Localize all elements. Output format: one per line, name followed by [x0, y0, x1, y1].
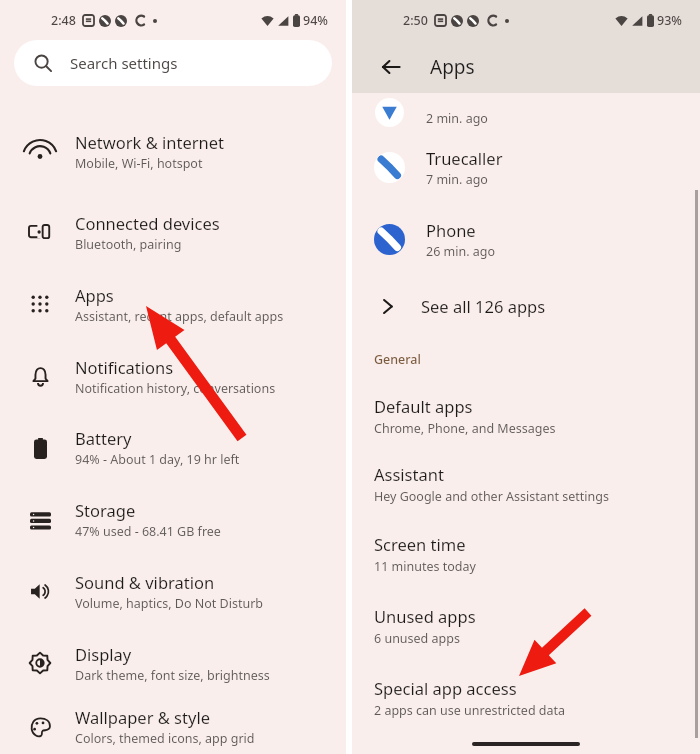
staticText: 26 min. ago: [426, 243, 496, 260]
staticText: Assistant: [374, 463, 444, 485]
staticText: Screen time: [374, 533, 466, 555]
button[interactable]: Special app access: [352, 662, 700, 734]
staticText: Storage: [75, 499, 136, 521]
staticText: Dark theme, font size, brightness: [75, 667, 270, 684]
button[interactable]: Storage: [0, 483, 346, 555]
staticText: 47% used - 68.41 GB free: [75, 523, 221, 540]
button[interactable]: Display: [0, 627, 346, 699]
staticText: 7 min. ago: [426, 171, 488, 188]
button[interactable]: Search settings: [14, 40, 332, 86]
staticText: Sound & vibration: [75, 571, 215, 593]
staticText: See all 126 apps: [421, 295, 546, 317]
button[interactable]: Back: [374, 50, 408, 84]
button[interactable]: Notifications: [0, 340, 346, 412]
staticText: Notifications: [75, 356, 174, 378]
staticText: 94% - About 1 day, 19 hr left: [75, 451, 240, 468]
staticText: 93%: [657, 12, 682, 29]
staticText: 6 unused apps: [374, 630, 460, 647]
button[interactable]: See all 126 apps: [352, 283, 700, 329]
staticText: Volume, haptics, Do Not Disturb: [75, 595, 264, 612]
staticText: Default apps: [374, 395, 473, 417]
staticText: Wallpaper & style: [75, 706, 210, 728]
button[interactable]: Phone: [352, 203, 700, 275]
staticText: Colors, themed icons, app grid: [75, 730, 255, 747]
button[interactable]: Screen time: [352, 518, 700, 590]
staticText: Notification history, conversations: [75, 380, 276, 397]
staticText: Bluetooth, pairing: [75, 236, 182, 253]
staticText: Display: [75, 643, 132, 665]
staticText: Truecaller: [426, 147, 503, 169]
button[interactable]: Sound & vibration: [0, 555, 346, 627]
staticText: Chrome, Phone, and Messages: [374, 420, 556, 437]
staticText: 11 minutes today: [374, 558, 476, 575]
staticText: Network & internet: [75, 131, 225, 153]
staticText: General: [374, 351, 421, 368]
staticText: Unused apps: [374, 605, 476, 627]
button[interactable]: Network & internet: [0, 106, 346, 196]
staticText: Phone: [426, 219, 476, 241]
button[interactable]: Default apps: [352, 382, 700, 450]
button[interactable]: Truecaller: [352, 131, 700, 203]
button[interactable]: Unused apps: [352, 590, 700, 662]
staticText: 2:48: [51, 12, 76, 29]
staticText: Apps: [430, 54, 475, 80]
staticText: 2:50: [403, 12, 428, 29]
staticText: Connected devices: [75, 212, 220, 234]
staticText: Assistant, recent apps, default apps: [75, 308, 284, 325]
button[interactable]: Assistant: [352, 450, 700, 518]
button[interactable]: 2 min. ago: [352, 93, 700, 131]
button[interactable]: Wallpaper & style: [0, 699, 346, 754]
staticText: Special app access: [374, 677, 517, 699]
staticText: Search settings: [70, 53, 178, 73]
staticText: Apps: [75, 284, 114, 306]
button[interactable]: Connected devices: [0, 196, 346, 268]
staticText: 2 apps can use unrestricted data: [374, 702, 566, 719]
staticText: 2 min. ago: [426, 110, 488, 127]
staticText: Hey Google and other Assistant settings: [374, 488, 609, 505]
staticText: 94%: [303, 12, 328, 29]
button[interactable]: Apps: [0, 268, 346, 340]
staticText: Mobile, Wi-Fi, hotspot: [75, 155, 203, 172]
staticText: Battery: [75, 427, 132, 449]
button[interactable]: Battery: [0, 412, 346, 483]
